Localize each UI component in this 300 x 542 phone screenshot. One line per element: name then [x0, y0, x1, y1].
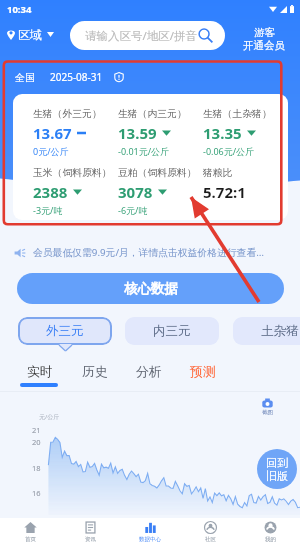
staticText: 16: [32, 488, 41, 498]
staticText: 生猪（内三元）: [118, 108, 187, 120]
staticText: 21: [32, 425, 41, 435]
staticText: -0.01元/公斤: [118, 145, 170, 157]
button[interactable]: 土杂猪: [233, 317, 300, 345]
staticText: -6元/吨: [118, 204, 148, 216]
staticText: 生猪（外三元）: [33, 108, 102, 120]
button[interactable]: 我的: [240, 518, 300, 542]
staticText: 猪粮比: [203, 167, 233, 179]
staticText: 2025-08-31: [50, 70, 103, 84]
staticText: 游客: [254, 26, 275, 39]
staticText: 首页: [25, 536, 36, 542]
button[interactable]: 请输入区号/地区/拼音: [70, 21, 225, 50]
button[interactable]: 生猪（内三元）: [118, 108, 203, 157]
button[interactable]: 预测: [178, 357, 227, 389]
button[interactable]: 玉米（饲料原料）: [33, 167, 118, 216]
staticText: 我的: [265, 536, 276, 542]
staticText: 元/公斤: [39, 413, 60, 421]
staticText: 区域: [18, 27, 42, 42]
staticText: 请输入区号/地区/拼音: [85, 28, 198, 44]
button[interactable]: 生猪（外三元）: [33, 108, 118, 157]
staticText: 社区: [205, 536, 216, 542]
staticText: 18: [32, 463, 41, 473]
staticText: 核心数据: [124, 280, 178, 297]
button[interactable]: 资讯: [60, 518, 120, 542]
staticText: 2388: [33, 182, 68, 202]
staticText: 10:34: [7, 3, 32, 16]
staticText: 数据中心: [139, 536, 161, 542]
staticText: 土杂猪: [261, 323, 299, 339]
staticText: 0元/公斤: [33, 145, 69, 157]
button[interactable]: 实时: [15, 357, 64, 389]
button[interactable]: 猪粮比: [203, 167, 288, 202]
staticText: 13.35: [203, 123, 242, 143]
staticText: 13.59: [118, 123, 157, 143]
button[interactable]: 首页: [0, 518, 60, 542]
staticText: 历史: [82, 364, 108, 380]
button[interactable]: 豆粕（饲料原料）: [118, 167, 203, 216]
button[interactable]: 会员最低仅需9.9元/月，详情点击权益价格进行查看…: [14, 246, 264, 259]
staticText: 3078: [118, 182, 153, 202]
button[interactable]: 内三元: [125, 317, 219, 345]
staticText: 回到 旧版: [266, 456, 288, 483]
button[interactable]: 生猪（土杂猪）: [203, 108, 288, 157]
button[interactable]: 数据中心: [120, 518, 180, 542]
staticText: 会员最低仅需9.9元/月，详情点击权益价格进行查看…: [33, 246, 264, 259]
staticText: 截图: [262, 409, 273, 416]
staticText: 分析: [136, 364, 162, 380]
button[interactable]: 游客: [243, 26, 285, 52]
staticText: 开通会员: [243, 39, 285, 52]
button[interactable]: 社区: [180, 518, 240, 542]
staticText: 预测: [190, 364, 216, 380]
staticText: 外三元: [46, 323, 84, 339]
staticText: 13.67: [33, 123, 72, 143]
staticText: 20: [32, 437, 41, 447]
staticText: 内三元: [153, 323, 191, 339]
staticText: 玉米（饲料原料）: [33, 167, 112, 179]
button[interactable]: 外三元: [18, 317, 112, 345]
staticText: 实时: [27, 364, 53, 380]
button[interactable]: 分析: [124, 357, 173, 389]
button[interactable]: 区域: [7, 27, 54, 42]
button[interactable]: 历史: [70, 357, 119, 389]
staticText: 资讯: [85, 536, 96, 542]
staticText: 生猪（土杂猪）: [203, 108, 272, 120]
staticText: -0.06元/公斤: [203, 145, 255, 157]
staticText: 豆粕（饲料原料）: [118, 167, 197, 179]
button[interactable]: 核心数据: [17, 273, 284, 304]
button[interactable]: 回到 旧版: [257, 449, 297, 489]
button[interactable]: 截图: [261, 398, 274, 416]
staticText: 全国: [15, 71, 35, 84]
staticText: -3元/吨: [33, 204, 63, 216]
staticText: 5.72:1: [203, 182, 246, 202]
